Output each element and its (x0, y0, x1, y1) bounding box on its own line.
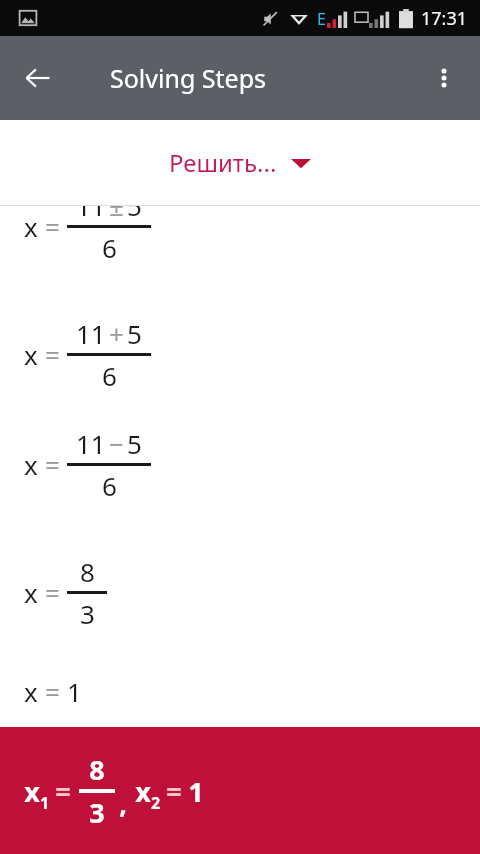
staticText: = (45, 337, 60, 372)
staticText: 11 (76, 426, 106, 461)
staticText: 6 (102, 230, 117, 265)
staticText: 17:31 (421, 6, 468, 31)
staticText: 3 (89, 794, 105, 831)
staticText: 11 (76, 206, 106, 223)
staticText: 5 (127, 206, 142, 223)
staticText: x (24, 674, 38, 709)
staticText: = (45, 575, 60, 610)
staticText: 2 (151, 792, 161, 814)
staticText: 1 (188, 773, 204, 810)
staticText: 8 (80, 554, 95, 589)
staticText: = (45, 447, 60, 482)
staticText: x (24, 575, 38, 610)
staticText: 11 (76, 316, 106, 351)
staticText: Решить... (169, 146, 277, 179)
staticText: 8 (89, 751, 105, 788)
button[interactable]: x (0, 727, 480, 854)
staticText: = (166, 773, 182, 810)
staticText: x (24, 447, 38, 482)
staticText: 6 (102, 468, 117, 503)
staticText: x (24, 209, 38, 244)
button[interactable]: Back (10, 50, 66, 106)
staticText: x (135, 773, 151, 810)
staticText: x (24, 337, 38, 372)
staticText: 1 (67, 674, 82, 709)
staticText: − (109, 426, 124, 461)
staticText: Solving Steps (110, 61, 266, 95)
staticText: = (45, 209, 60, 244)
staticText: 3 (80, 596, 95, 631)
staticText: x (24, 773, 40, 810)
staticText: ± (109, 206, 124, 223)
staticText: 1 (40, 792, 50, 814)
staticText: = (45, 674, 60, 709)
staticText: , (119, 785, 127, 822)
staticText: E (317, 8, 326, 30)
staticText: = (55, 773, 71, 810)
button[interactable]: More options (416, 50, 472, 106)
staticText: 5 (127, 426, 142, 461)
staticText: 6 (102, 358, 117, 393)
staticText: 5 (127, 316, 142, 351)
staticText: + (109, 316, 124, 351)
button[interactable]: Решить... (163, 140, 317, 185)
